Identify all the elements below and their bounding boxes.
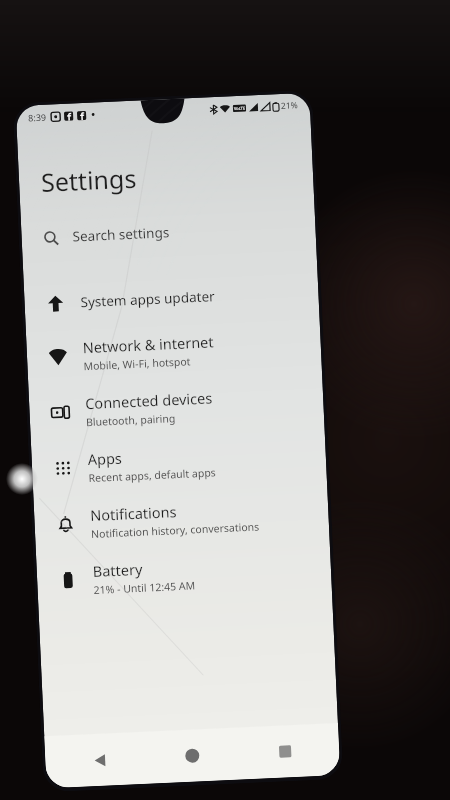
button[interactable]: Recent apps xyxy=(264,731,306,772)
button[interactable]: Home xyxy=(171,735,213,777)
staticText: 21% xyxy=(281,99,298,112)
button[interactable]: Search settings xyxy=(21,209,316,256)
button[interactable]: Back xyxy=(78,739,120,781)
staticText: 8:39 xyxy=(28,111,46,123)
staticText: Apps xyxy=(87,447,123,469)
staticText: Settings xyxy=(40,161,138,199)
staticText: Network & internet xyxy=(82,331,214,357)
button[interactable]: System apps updater xyxy=(23,266,319,330)
button[interactable]: Battery xyxy=(36,540,332,609)
staticText: Notification history, conversations xyxy=(91,519,260,541)
staticText: Notifications xyxy=(90,501,178,525)
staticText: Connected devices xyxy=(85,387,213,413)
staticText: Bluetooth, pairing xyxy=(86,411,176,429)
staticText: System apps updater xyxy=(80,287,216,311)
staticText: Battery xyxy=(92,559,143,581)
staticText: Mobile, Wi-Fi, hotspot xyxy=(83,354,192,373)
button[interactable]: Notifications xyxy=(33,484,330,554)
staticText: Search settings xyxy=(72,223,170,246)
button[interactable]: Connected devices xyxy=(28,372,324,442)
button[interactable]: Network & internet xyxy=(26,316,322,386)
staticText: 21% - Until 12:45 AM xyxy=(93,578,196,597)
staticText: Recent apps, default apps xyxy=(88,465,217,485)
staticText: VoLTE xyxy=(234,106,246,111)
button[interactable]: Apps xyxy=(31,428,327,498)
